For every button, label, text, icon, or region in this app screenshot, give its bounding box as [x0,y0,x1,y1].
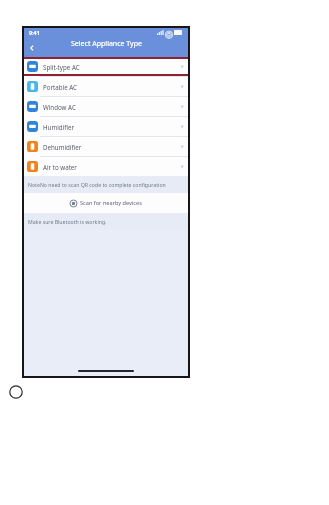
button[interactable]: Portable AC [22,77,190,96]
staticText: Select Appliance Type [71,39,142,49]
button[interactable]: Back [26,42,38,54]
button[interactable]: Split-type AC [22,57,190,76]
staticText: Make sure Bluetooth is working. [28,218,107,225]
button[interactable]: Humidifier [22,117,190,136]
staticText: NoteNo need to scan QR code to complete … [28,181,166,188]
staticText: Portable AC [43,83,77,91]
button[interactable]: Dehumidifier [22,137,190,156]
button[interactable]: Scan for nearby devices [22,193,190,213]
staticText: Dehumidifier [43,143,82,151]
staticText: Split-type AC [43,63,80,71]
button[interactable]: Air to water [22,157,190,176]
staticText: Air to water [43,163,77,171]
staticText: Humidifier [43,123,74,131]
staticText: Scan for nearby devices [80,199,142,207]
staticText: Window AC [43,103,76,111]
staticText: 9:41 [29,29,40,36]
button[interactable]: Window AC [22,97,190,116]
